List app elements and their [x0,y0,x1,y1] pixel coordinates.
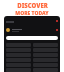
staticText: MORE TODAY [15,10,49,17]
button[interactable]: Notifications [54,20,58,24]
button[interactable] [6,36,58,40]
staticText: DISCOVER [17,2,48,10]
button[interactable] [6,27,58,33]
